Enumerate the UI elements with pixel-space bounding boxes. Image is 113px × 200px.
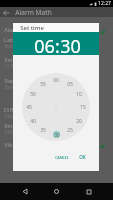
- staticText: 30: [60, 34, 81, 57]
- staticText: Set time: [20, 24, 44, 32]
- staticText: 35: [40, 127, 46, 134]
- staticText: 15: [80, 104, 86, 111]
- staticText: 10: [76, 91, 82, 98]
- button[interactable]: Home: [48, 183, 65, 200]
- button[interactable]: Back: [1, 8, 10, 17]
- staticText: CANCEL: [55, 155, 69, 160]
- staticText: Difficulty: [4, 106, 27, 113]
- button[interactable]: OK: [77, 152, 88, 162]
- button[interactable]: CANCEL: [53, 153, 71, 162]
- staticText: Set time: [4, 56, 26, 63]
- staticText: Ringtone: [4, 122, 28, 129]
- staticText: 50: [30, 91, 36, 98]
- button[interactable]: Recents: [80, 183, 97, 200]
- staticText: 55: [40, 81, 46, 88]
- staticText: Label: [4, 36, 18, 43]
- staticText: :: [55, 34, 60, 57]
- staticText: Alarm Math: [15, 8, 52, 17]
- staticText: Alarm: [4, 43, 17, 49]
- button[interactable]: Back: [16, 183, 33, 200]
- staticText: 05: [67, 81, 73, 88]
- staticText: Every day: [4, 84, 25, 90]
- staticText: Easy: [4, 113, 14, 119]
- staticText: 20: [76, 118, 82, 125]
- staticText: 30: [54, 132, 60, 138]
- staticText: 12:30: [4, 63, 16, 69]
- staticText: Alarm enabled: [4, 26, 42, 33]
- staticText: Vibrate: [4, 141, 23, 148]
- staticText: 45: [26, 104, 32, 111]
- staticText: 40: [30, 118, 36, 125]
- staticText: Default: [4, 129, 20, 135]
- staticText: OK: [79, 154, 86, 160]
- staticText: 25: [67, 127, 73, 134]
- staticText: Repeat: [4, 77, 23, 84]
- staticText: 12:27: [98, 0, 111, 7]
- staticText: 06: [34, 34, 55, 57]
- staticText: 00: [53, 77, 59, 84]
